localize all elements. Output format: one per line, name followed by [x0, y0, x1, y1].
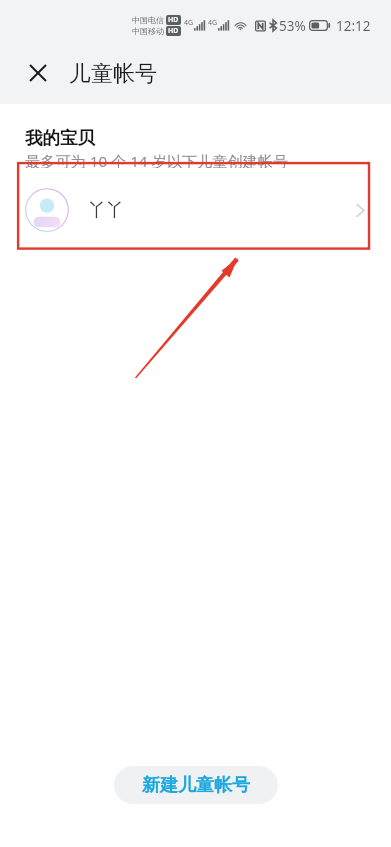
button[interactable]: 新建儿童帐号: [114, 766, 278, 804]
staticText: HD: [168, 15, 179, 25]
button[interactable]: Close: [18, 53, 58, 93]
button[interactable]: 丫丫: [14, 168, 377, 252]
staticText: 53%: [279, 17, 306, 35]
staticText: 儿童帐号: [69, 60, 157, 88]
staticText: 最多可为 10 个 14 岁以下儿童创建帐号: [25, 151, 289, 172]
staticText: 4G: [184, 18, 194, 28]
staticText: 4G: [208, 18, 218, 28]
staticText: 丫丫: [88, 199, 124, 222]
staticText: 新建儿童帐号: [142, 774, 250, 797]
staticText: 中国移动: [132, 26, 164, 36]
staticText: HD: [168, 26, 179, 36]
staticText: 我的宝贝: [25, 127, 95, 149]
staticText: 12:12: [336, 17, 371, 35]
staticText: 中国电信: [132, 15, 164, 25]
